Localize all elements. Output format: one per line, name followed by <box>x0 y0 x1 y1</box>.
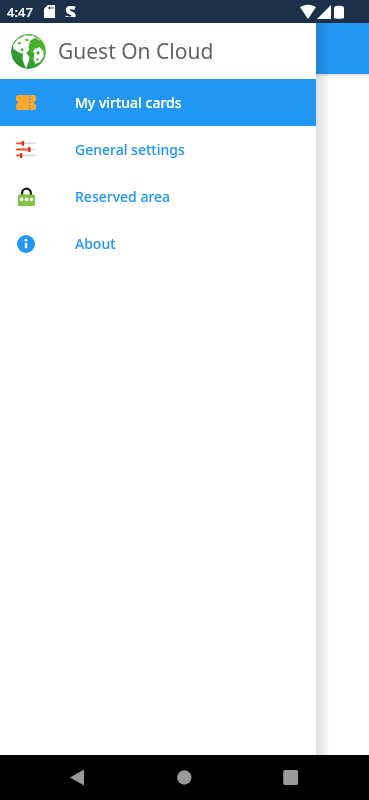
staticText: General settings <box>75 140 185 159</box>
button[interactable]: Reserved area <box>0 173 316 220</box>
button[interactable]: General settings <box>0 126 316 173</box>
staticText: 4:47 <box>7 3 33 21</box>
button[interactable]: My virtual cards <box>0 79 316 126</box>
staticText: Guest On Cloud <box>58 37 214 66</box>
staticText: S <box>65 0 76 17</box>
staticText: Reserved area <box>75 187 171 206</box>
staticText: My virtual cards <box>75 93 182 112</box>
button[interactable]: About <box>0 220 316 267</box>
staticText: About <box>75 234 116 253</box>
